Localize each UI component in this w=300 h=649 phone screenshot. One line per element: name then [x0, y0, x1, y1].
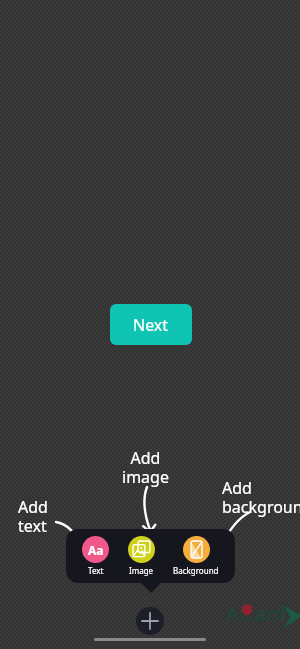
button[interactable]: Aa	[80, 536, 111, 576]
staticText: Background	[173, 565, 219, 576]
button[interactable]: Add	[136, 607, 164, 635]
staticText: Next	[133, 314, 169, 336]
staticText: Alcard	[226, 600, 287, 627]
staticText: Text	[88, 565, 104, 576]
button[interactable]: Image	[126, 536, 157, 576]
staticText: Add text	[18, 496, 48, 537]
button[interactable]: Background	[171, 536, 221, 576]
staticText: Add backgroun	[222, 477, 300, 518]
staticText: Image	[129, 565, 154, 576]
button[interactable]: Next	[110, 304, 192, 345]
staticText: Aa	[88, 542, 104, 558]
staticText: Add image	[122, 447, 169, 488]
